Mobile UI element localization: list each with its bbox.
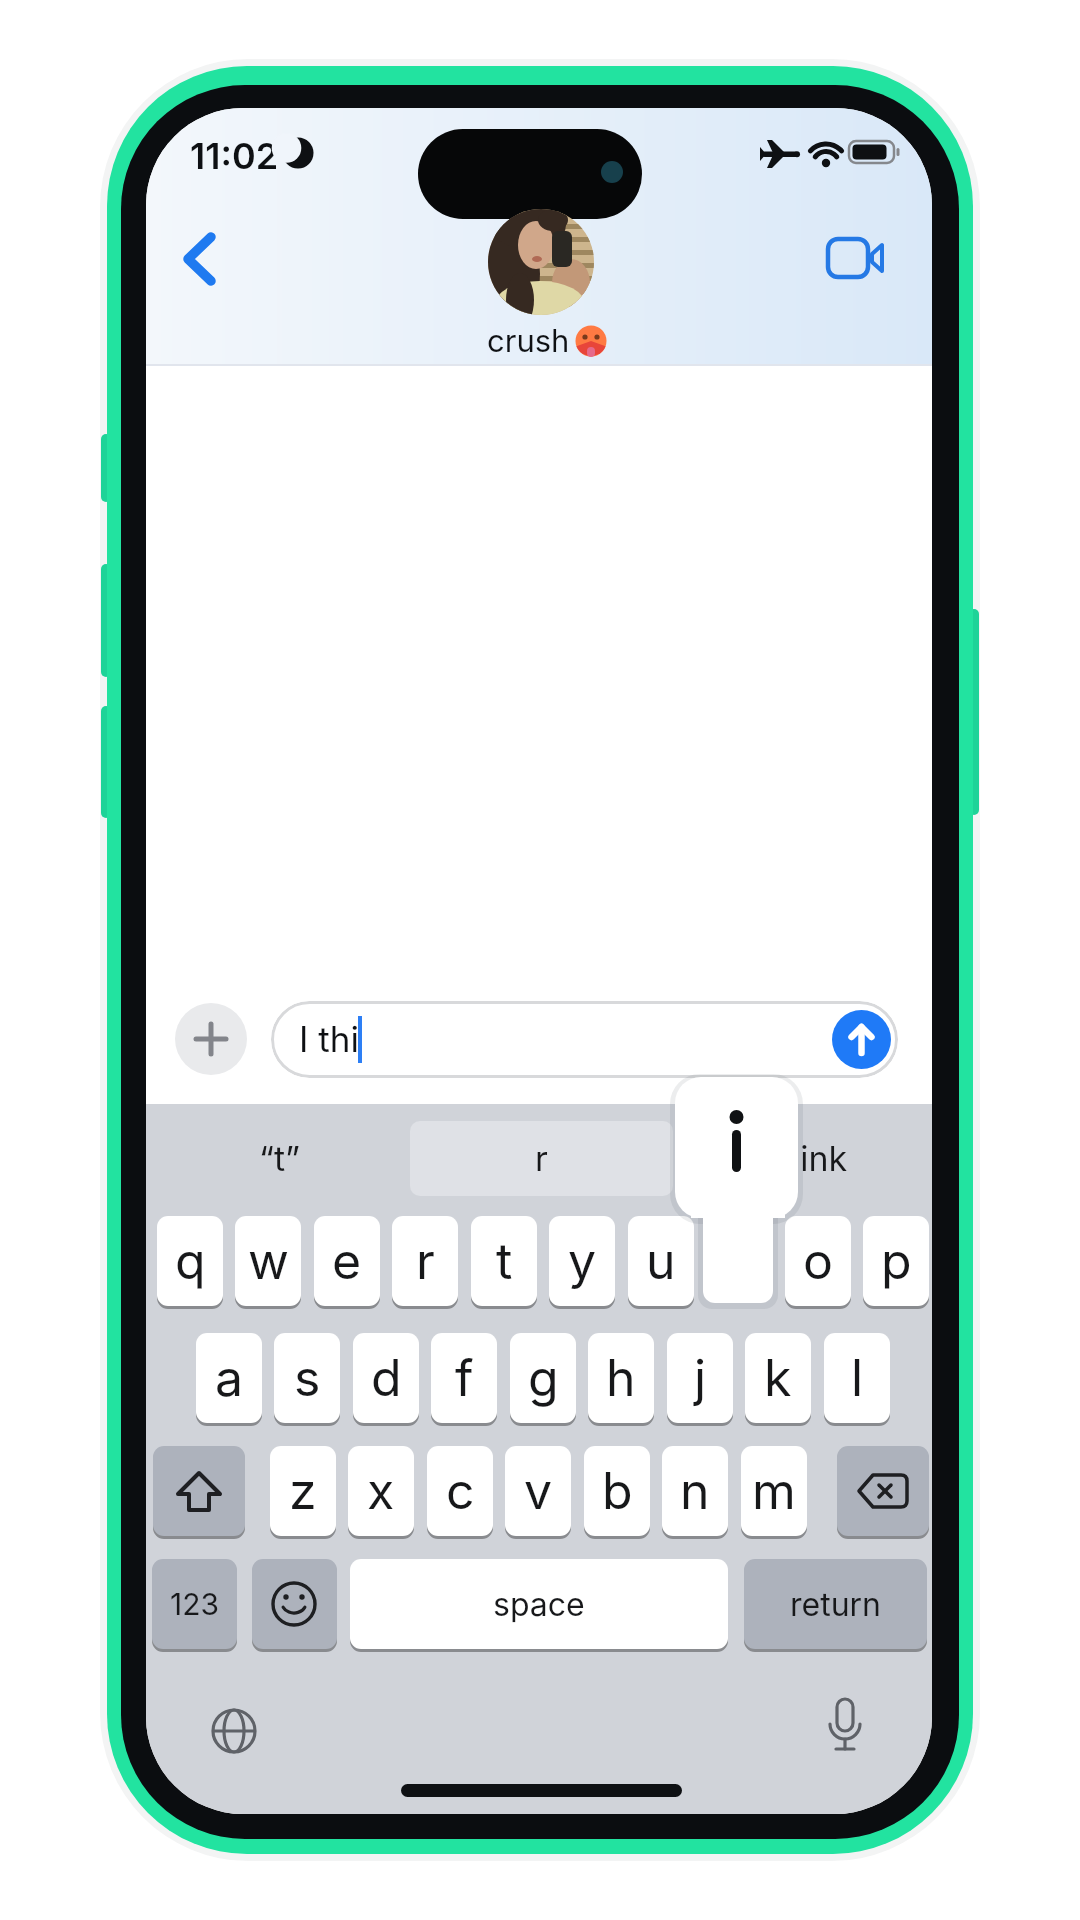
staticText: y bbox=[568, 1231, 597, 1291]
staticText: g bbox=[528, 1348, 559, 1408]
button[interactable] bbox=[164, 1116, 400, 1200]
staticText: j bbox=[694, 1348, 707, 1408]
staticText: x bbox=[367, 1461, 395, 1521]
staticText: return bbox=[790, 1585, 882, 1624]
button[interactable]: u bbox=[628, 1216, 694, 1306]
staticText: I thi bbox=[299, 1018, 359, 1060]
button[interactable] bbox=[832, 1010, 891, 1069]
button[interactable]: m bbox=[741, 1446, 807, 1536]
staticText: d bbox=[371, 1348, 402, 1408]
staticText: 11:02 bbox=[190, 134, 279, 178]
button[interactable]: x bbox=[348, 1446, 414, 1536]
staticText: u bbox=[646, 1231, 676, 1291]
button[interactable]: l bbox=[824, 1333, 890, 1423]
staticText: z bbox=[289, 1461, 317, 1521]
button[interactable]: s bbox=[274, 1333, 340, 1423]
staticText: v bbox=[524, 1461, 553, 1521]
staticText: s bbox=[294, 1348, 321, 1408]
staticText: l bbox=[851, 1348, 864, 1408]
button[interactable] bbox=[837, 1446, 929, 1536]
staticText: f bbox=[455, 1348, 474, 1408]
button[interactable] bbox=[252, 1559, 337, 1649]
button[interactable]: q bbox=[157, 1216, 223, 1306]
button[interactable]: 123 bbox=[152, 1559, 237, 1649]
staticText: e bbox=[332, 1231, 362, 1291]
staticText: w bbox=[248, 1231, 289, 1291]
button[interactable]: b bbox=[584, 1446, 650, 1536]
button[interactable] bbox=[805, 1687, 885, 1767]
button[interactable]: k bbox=[745, 1333, 811, 1423]
staticText: n bbox=[680, 1461, 710, 1521]
staticText: 123 bbox=[170, 1586, 220, 1622]
staticText: r bbox=[535, 1138, 548, 1179]
button[interactable]: t bbox=[471, 1216, 537, 1306]
button[interactable] bbox=[488, 209, 594, 315]
button[interactable]: e bbox=[314, 1216, 380, 1306]
button[interactable] bbox=[410, 1121, 673, 1196]
staticText: c bbox=[446, 1461, 475, 1521]
button[interactable]: n bbox=[662, 1446, 728, 1536]
staticText: m bbox=[752, 1461, 796, 1521]
button[interactable] bbox=[153, 1446, 245, 1536]
button[interactable]: y bbox=[549, 1216, 615, 1306]
button[interactable]: w bbox=[235, 1216, 301, 1306]
button[interactable] bbox=[682, 1116, 922, 1200]
button[interactable]: j bbox=[667, 1333, 733, 1423]
staticText: a bbox=[215, 1348, 244, 1408]
staticText: b bbox=[602, 1461, 633, 1521]
button[interactable]: d bbox=[353, 1333, 419, 1423]
button[interactable]: space bbox=[350, 1559, 728, 1649]
button[interactable]: c bbox=[427, 1446, 493, 1536]
staticText: h bbox=[606, 1348, 636, 1408]
staticText: crush bbox=[487, 322, 570, 360]
staticText: k bbox=[764, 1348, 792, 1408]
button[interactable]: o bbox=[785, 1216, 851, 1306]
button[interactable]: a bbox=[196, 1333, 262, 1423]
staticText: think bbox=[769, 1138, 848, 1179]
button[interactable] bbox=[814, 226, 898, 296]
button[interactable]: return bbox=[744, 1559, 927, 1649]
staticText: t bbox=[496, 1231, 513, 1291]
button[interactable]: h bbox=[588, 1333, 654, 1423]
staticText: o bbox=[803, 1231, 833, 1291]
button[interactable]: v bbox=[505, 1446, 571, 1536]
button[interactable]: I thi bbox=[271, 1001, 898, 1078]
staticText: space bbox=[493, 1585, 585, 1624]
button[interactable]: f bbox=[431, 1333, 497, 1423]
staticText: q bbox=[175, 1231, 206, 1291]
button[interactable] bbox=[170, 222, 230, 302]
staticText: r bbox=[416, 1231, 435, 1291]
button[interactable]: p bbox=[863, 1216, 929, 1306]
button[interactable] bbox=[194, 1691, 274, 1771]
staticText: p bbox=[881, 1231, 912, 1291]
button[interactable]: r bbox=[392, 1216, 458, 1306]
button[interactable]: z bbox=[270, 1446, 336, 1536]
button[interactable] bbox=[175, 1003, 247, 1075]
staticText: “t” bbox=[259, 1138, 301, 1179]
button[interactable]: g bbox=[510, 1333, 576, 1423]
